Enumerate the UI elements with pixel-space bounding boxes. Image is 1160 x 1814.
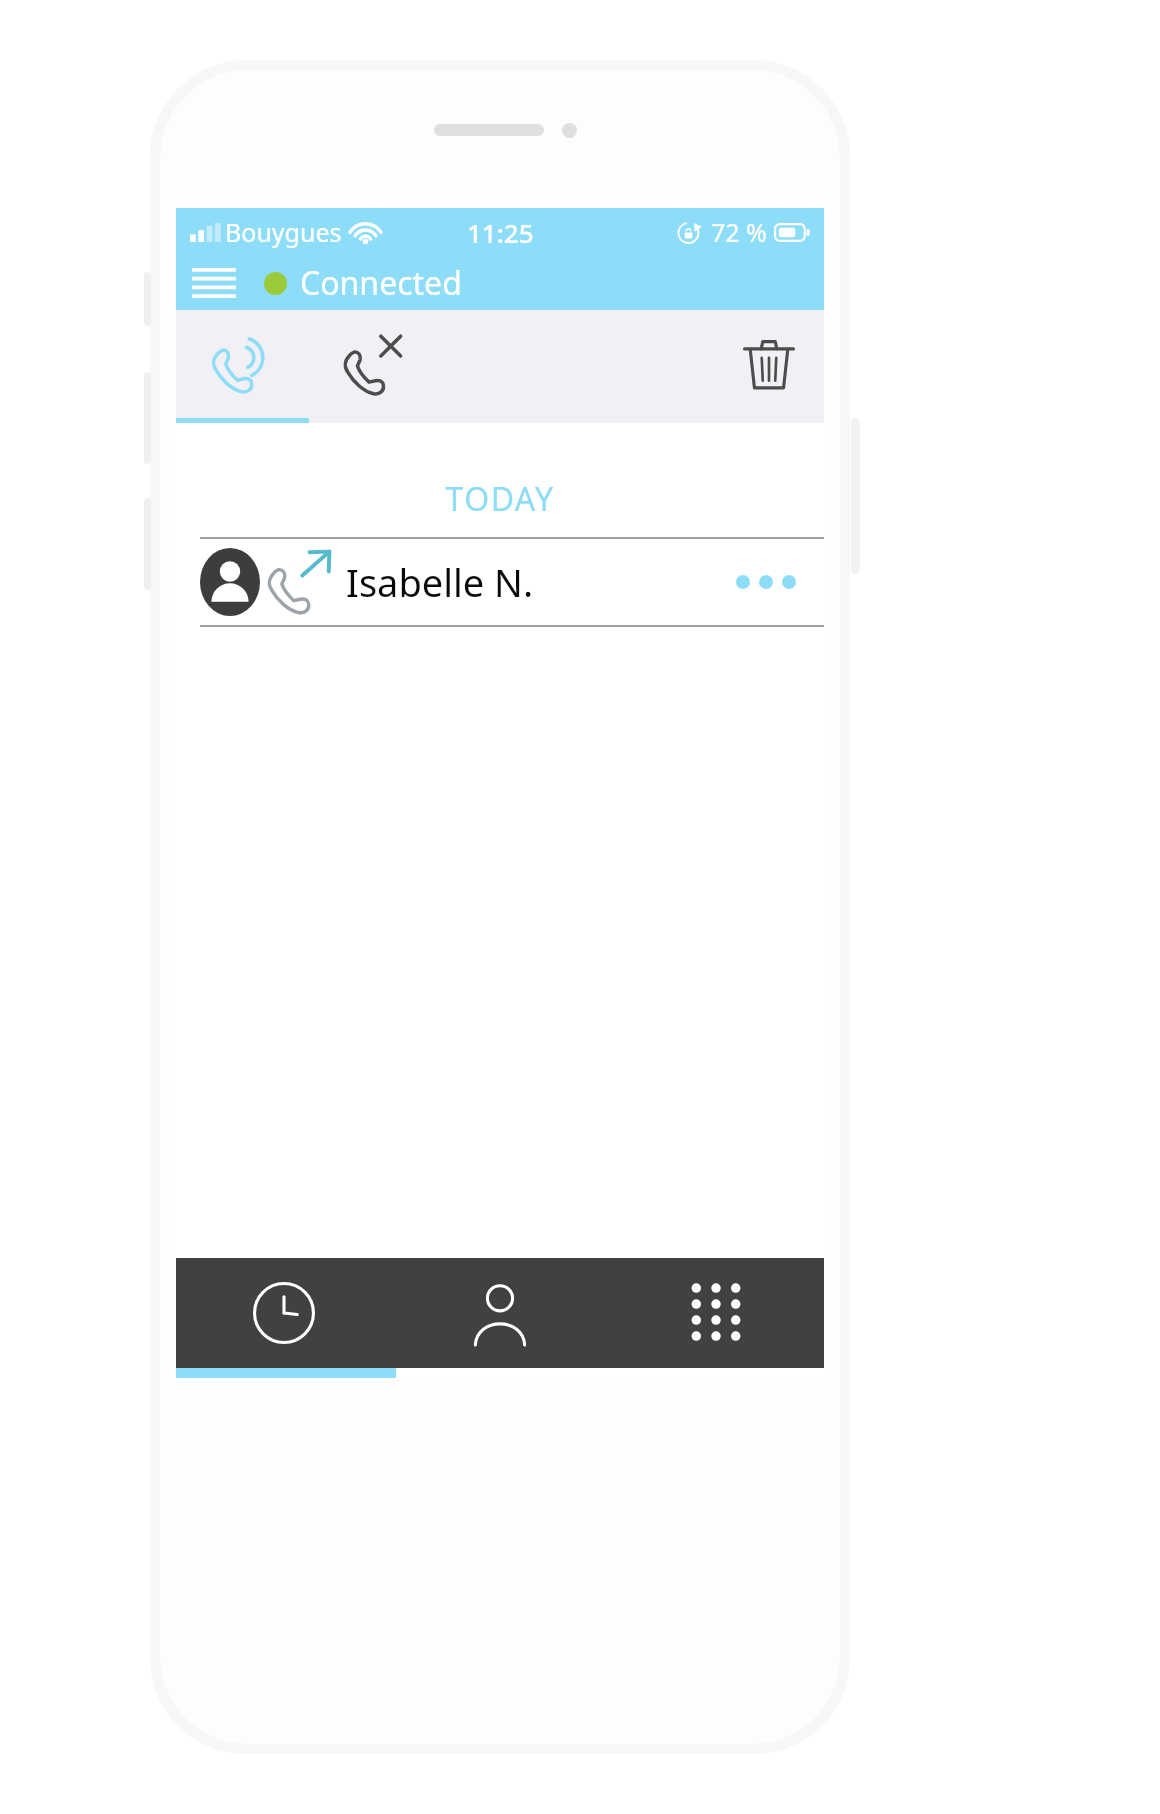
button[interactable]: Contacts [392, 1258, 608, 1368]
staticText: 72 % [711, 215, 767, 249]
staticText: TODAY [176, 477, 824, 521]
staticText: 11:25 [467, 215, 534, 250]
button[interactable]: Dial pad [608, 1258, 824, 1368]
button[interactable]: Call history [176, 1258, 392, 1368]
button[interactable]: More options [728, 561, 804, 603]
button[interactable]: Open navigation menu [176, 259, 248, 307]
staticText: Connected [300, 261, 462, 305]
button[interactable]: All calls [176, 310, 309, 418]
button[interactable]: Missed calls [309, 310, 442, 418]
staticText: Bouygues [225, 215, 342, 249]
button[interactable]: Delete all [714, 310, 824, 418]
button[interactable]: Isabelle N. [176, 539, 824, 625]
staticText: Isabelle N. [346, 556, 534, 608]
